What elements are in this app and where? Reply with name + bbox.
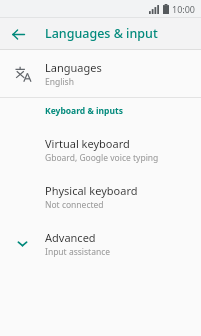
button[interactable]: Physical keyboard [0,173,201,220]
staticText: Gboard, Google voice typing [45,152,159,164]
staticText: Not connected [45,199,104,211]
staticText: English [45,76,74,88]
staticText: Advanced [45,230,96,245]
staticText: Keyboard & inputs [45,105,123,117]
staticText: Input assistance [45,246,111,258]
button[interactable]: Languages [0,50,201,97]
button[interactable]: Advanced [0,220,201,267]
staticText: Virtual keyboard [45,136,130,151]
staticText: Languages [45,60,102,75]
staticText: 10:00 [172,3,196,15]
staticText: Languages & input [45,25,158,42]
staticText: Physical keyboard [45,183,138,198]
button[interactable]: Virtual keyboard [0,126,201,173]
button[interactable]: Back [6,22,30,46]
